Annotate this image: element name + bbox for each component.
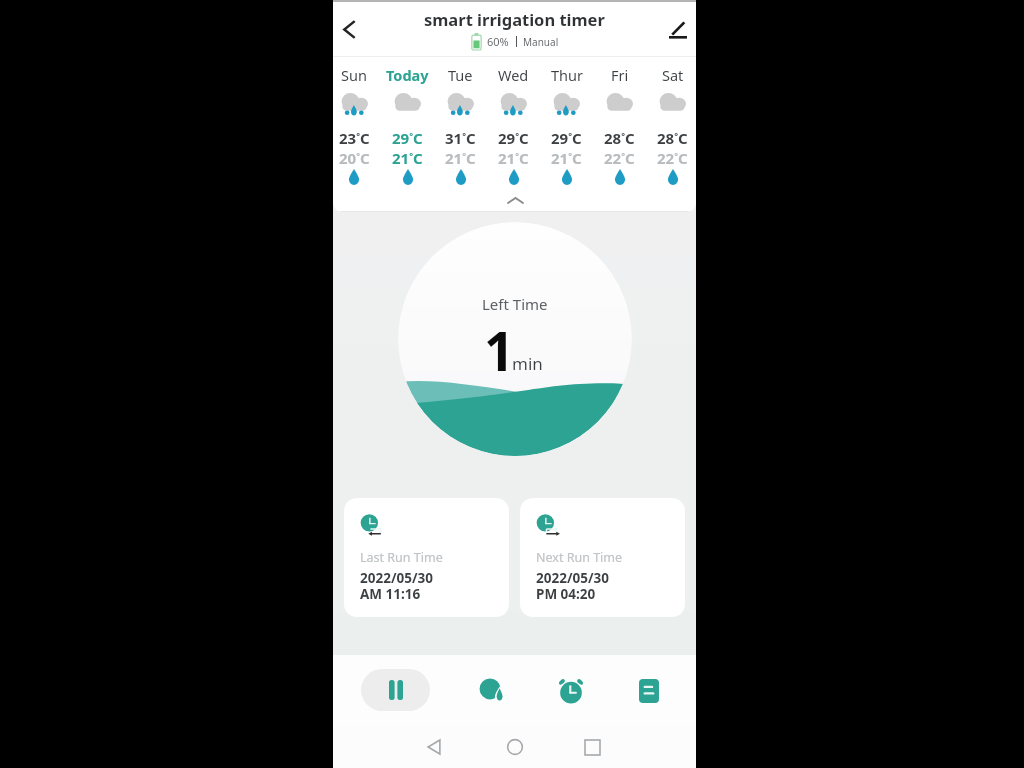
button[interactable]: Tue [434, 57, 487, 212]
staticText: min [512, 352, 543, 375]
button[interactable]: Watering [473, 671, 513, 711]
button[interactable]: Next Run Time [520, 498, 685, 617]
staticText: 22°C [604, 148, 635, 168]
button[interactable]: Back [329, 9, 369, 49]
button[interactable]: Log [629, 671, 669, 711]
staticText: 21°C [551, 148, 582, 168]
staticText: 21°C [392, 148, 423, 168]
staticText: 28°C [604, 128, 635, 148]
button[interactable]: Sat [646, 57, 696, 212]
staticText: Manual [523, 35, 559, 49]
staticText: Sun [341, 65, 367, 85]
button[interactable]: Wed [487, 57, 540, 212]
staticText: 21°C [498, 148, 529, 168]
staticText: 31°C [445, 128, 476, 148]
button[interactable]: Today [381, 57, 434, 212]
staticText: 20°C [339, 148, 370, 168]
staticText: 2022/05/30 [536, 569, 609, 587]
button[interactable]: Last Run Time [344, 498, 509, 617]
staticText: 1 [484, 314, 515, 386]
staticText: smart irrigation timer [424, 8, 605, 30]
button[interactable]: Sun [333, 57, 381, 212]
staticText: 29°C [392, 128, 423, 148]
staticText: Wed [498, 65, 529, 85]
button[interactable]: Edit [658, 9, 698, 49]
staticText: 23°C [339, 128, 370, 148]
staticText: Last Run Time [360, 549, 443, 566]
button[interactable]: Home [498, 730, 532, 764]
button[interactable]: Collapse forecast [492, 192, 538, 208]
staticText: Fri [611, 65, 629, 85]
staticText: Today [386, 65, 429, 85]
button[interactable]: Thur [540, 57, 593, 212]
staticText: 60% [487, 34, 509, 49]
button[interactable]: Pause [361, 669, 430, 711]
staticText: Left Time [482, 294, 548, 314]
staticText: Tue [448, 65, 473, 85]
staticText: 28°C [657, 128, 688, 148]
staticText: 21°C [445, 148, 476, 168]
staticText: Next Run Time [536, 549, 623, 566]
staticText: Thur [551, 65, 583, 85]
staticText: PM 04:20 [536, 585, 596, 603]
staticText: 29°C [498, 128, 529, 148]
staticText: AM 11:16 [360, 585, 421, 603]
staticText: Sat [662, 65, 684, 85]
button[interactable]: Schedule [551, 671, 591, 711]
staticText: 29°C [551, 128, 582, 148]
staticText: 22°C [657, 148, 688, 168]
button[interactable]: Fri [593, 57, 646, 212]
button[interactable]: Left Time [398, 222, 632, 456]
staticText: 2022/05/30 [360, 569, 433, 587]
button[interactable]: Back [417, 730, 451, 764]
button[interactable]: Recents [575, 730, 609, 764]
